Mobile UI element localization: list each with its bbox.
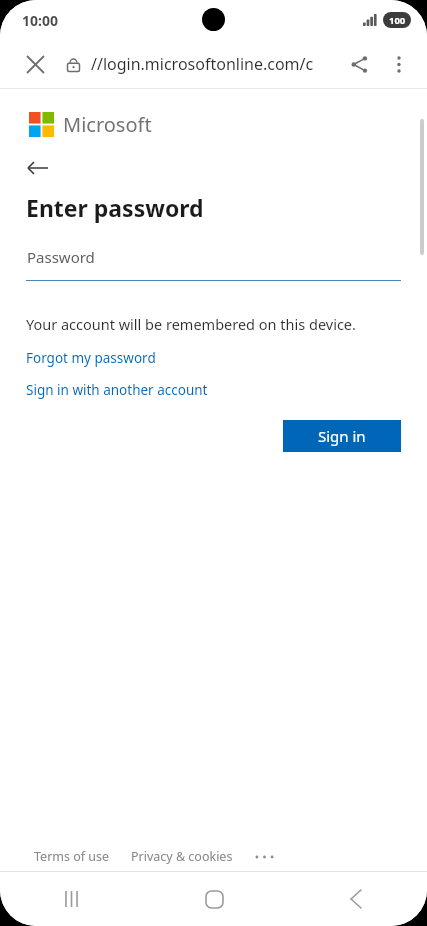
- button[interactable]: Home: [143, 872, 285, 926]
- staticText: Privacy & cookies: [131, 848, 233, 865]
- button[interactable]: Sign in: [283, 420, 401, 452]
- button[interactable]: Share: [339, 44, 379, 84]
- staticText: Sign in with another account: [26, 381, 208, 399]
- staticText: Your account will be remembered on this …: [26, 314, 356, 334]
- button[interactable]: Sign in with another account: [26, 381, 208, 399]
- button[interactable]: Back: [27, 155, 57, 181]
- button[interactable]: Close: [14, 43, 56, 85]
- staticText: Password: [27, 247, 95, 267]
- staticText: Forgot my password: [26, 349, 156, 367]
- staticText: Enter password: [26, 192, 204, 223]
- button[interactable]: Forgot my password: [26, 349, 156, 367]
- button[interactable]: Terms of use: [34, 848, 110, 865]
- button[interactable]: Site information: [58, 49, 88, 79]
- button[interactable]: Back: [285, 872, 427, 926]
- staticText: 10:00: [22, 11, 58, 30]
- button[interactable]: Privacy & cookies: [131, 848, 233, 865]
- button[interactable]: More links: [252, 847, 276, 867]
- staticText: 100: [389, 14, 406, 27]
- button[interactable]: Recent apps: [0, 872, 143, 926]
- staticText: Microsoft: [63, 111, 152, 138]
- button[interactable]: More options: [379, 44, 419, 84]
- staticText: Terms of use: [34, 848, 110, 865]
- button[interactable]: //login.microsoftonline.com/c: [91, 53, 325, 75]
- staticText: Sign in: [318, 426, 366, 446]
- button[interactable]: Password: [26, 247, 401, 281]
